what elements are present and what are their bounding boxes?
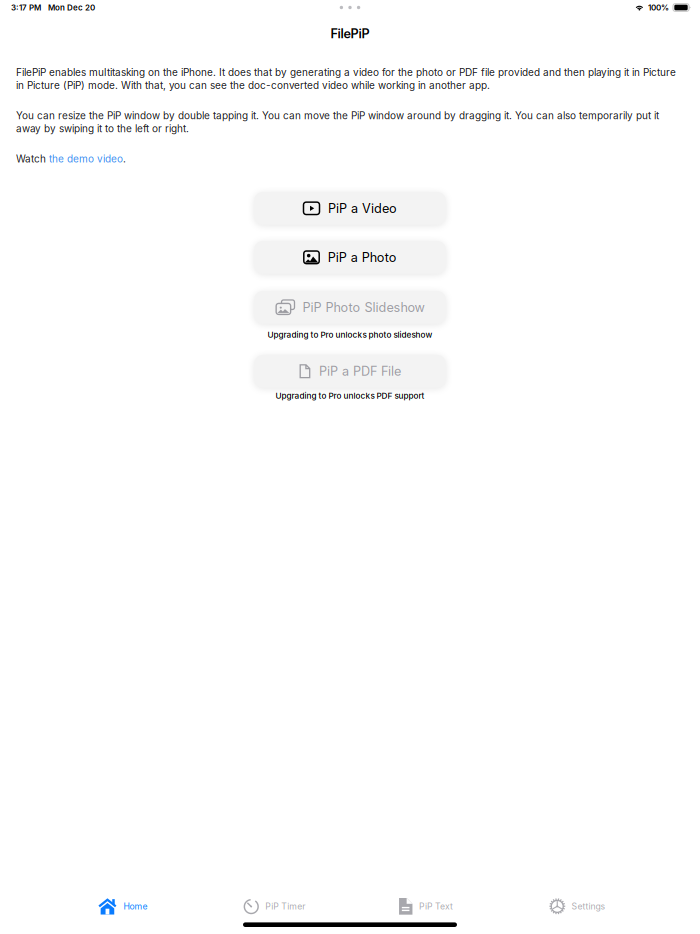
staticText: Watch	[16, 153, 49, 165]
staticText: Upgrading to Pro unlocks photo slideshow	[267, 330, 432, 340]
staticText: PiP a Photo	[328, 250, 397, 265]
staticText: Upgrading to Pro unlocks PDF support	[275, 391, 424, 401]
button[interactable]: PiP Photo Slideshow	[254, 291, 446, 324]
button[interactable]: PiP a PDF File	[254, 355, 446, 388]
button[interactable]: Settings	[501, 891, 653, 921]
staticText: 100%	[648, 3, 669, 12]
staticText: PiP Text	[419, 901, 453, 912]
staticText: PiP Timer	[265, 901, 305, 912]
button[interactable]: PiP Text	[350, 891, 501, 921]
staticText: Home	[123, 901, 147, 912]
button[interactable]: PiP a Photo	[254, 241, 446, 274]
staticText: PiP a Video	[328, 201, 397, 216]
staticText: .	[123, 153, 126, 165]
staticText: the demo video	[49, 153, 123, 165]
staticText: Mon Dec 20	[48, 3, 95, 12]
staticText: FilePiP enables multitasking on the iPho…	[16, 66, 676, 91]
staticText: 3:17 PM	[11, 3, 41, 12]
staticText: PiP Photo Slideshow	[302, 300, 424, 315]
staticText: PiP a PDF File	[319, 364, 401, 379]
staticText: You can resize the PiP window by double …	[16, 109, 659, 135]
button[interactable]: the demo video	[49, 153, 123, 165]
button[interactable]: PiP Timer	[198, 891, 350, 921]
button[interactable]: Home	[47, 891, 198, 921]
button[interactable]: PiP a Video	[254, 192, 446, 225]
staticText: FilePiP	[330, 26, 369, 41]
staticText: Settings	[571, 901, 605, 912]
